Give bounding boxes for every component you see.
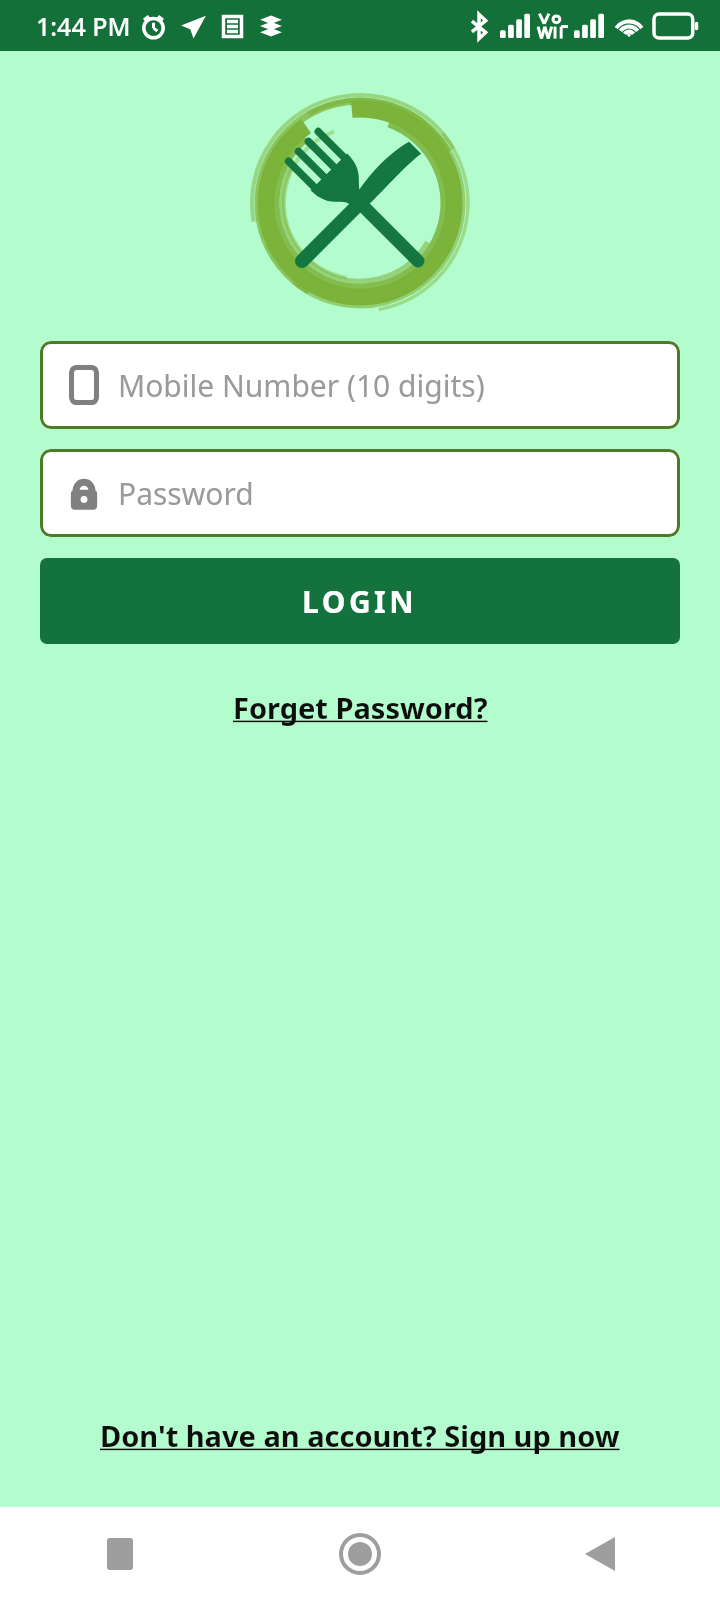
button[interactable]: Recent apps bbox=[0, 1507, 240, 1600]
staticText: 1:44 PM bbox=[36, 9, 131, 43]
button[interactable]: Forget Password? bbox=[223, 684, 498, 731]
button[interactable]: Mobile Number (10 digits) bbox=[40, 341, 680, 429]
button[interactable]: Back bbox=[480, 1507, 720, 1600]
button[interactable]: Home bbox=[240, 1507, 480, 1600]
button[interactable]: LOGIN bbox=[40, 558, 680, 644]
button[interactable]: Password bbox=[40, 449, 680, 537]
staticText: Forget Password? bbox=[233, 688, 488, 727]
staticText: Password bbox=[118, 473, 254, 514]
staticText: Mobile Number (10 digits) bbox=[118, 365, 485, 406]
staticText: LOGIN bbox=[302, 581, 418, 622]
button[interactable]: Don't have an account? Sign up now bbox=[90, 1412, 630, 1459]
staticText: Don't have an account? Sign up now bbox=[100, 1416, 620, 1455]
